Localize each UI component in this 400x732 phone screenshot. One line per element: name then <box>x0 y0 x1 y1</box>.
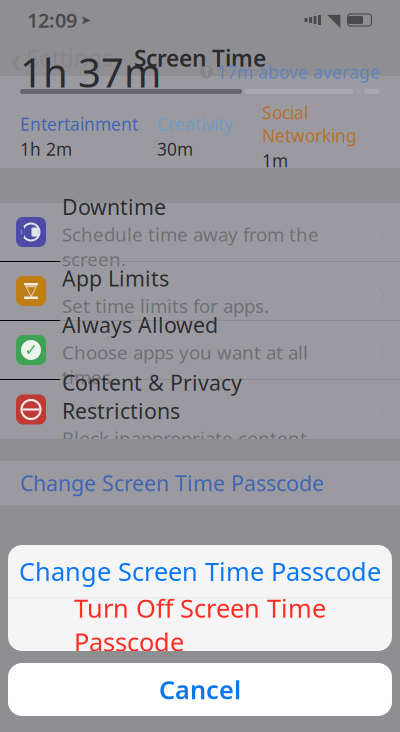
button[interactable]: Change Screen Time Passcode <box>0 461 400 505</box>
button[interactable]: Change Screen Time Passcode <box>8 545 392 598</box>
staticText: 17m above average <box>217 60 380 83</box>
staticText: Screen Time <box>134 43 266 73</box>
staticText: ‹ <box>10 31 22 84</box>
button[interactable]: Downtime <box>0 203 400 262</box>
staticText: Settings <box>27 43 113 73</box>
staticText: Always Allowed <box>62 310 218 339</box>
staticText: Content & Privacy Restrictions <box>62 368 242 425</box>
staticText: 12:09 <box>27 7 77 33</box>
staticText: ✓ <box>24 341 37 359</box>
staticText: 1m <box>262 149 288 172</box>
staticText: Turn Off Screen Time Passcode <box>74 591 326 658</box>
staticText: Schedule time away from the screen. <box>62 222 319 271</box>
staticText: Creativity <box>157 112 233 135</box>
staticText: Choose apps you want at all times. <box>62 340 308 389</box>
staticText: 30m <box>157 137 193 160</box>
staticText: ➤ <box>80 12 91 27</box>
staticText: 1h 37m <box>20 45 161 98</box>
button[interactable]: Cancel <box>8 663 392 716</box>
staticText: Block inappropriate content. <box>62 426 312 451</box>
staticText: Entertainment <box>20 112 138 135</box>
staticText: 1h 2m <box>20 137 72 160</box>
staticText: Change Screen Time Passcode <box>19 554 381 588</box>
staticText: ◥ <box>327 10 340 30</box>
staticText: ▽ <box>25 283 36 299</box>
button[interactable]: Turn Off Screen Time Passcode <box>8 598 392 651</box>
button[interactable]: ✓ <box>0 321 400 380</box>
button[interactable]: Content & Privacy Restrictions <box>0 380 400 439</box>
staticText: Downtime <box>62 192 166 221</box>
button[interactable]: ‹ <box>0 40 121 76</box>
staticText: Change Screen Time Passcode <box>20 469 324 497</box>
staticText: App Limits <box>62 264 169 292</box>
button[interactable]: ▽ <box>0 262 400 321</box>
staticText: ↑ <box>201 65 211 79</box>
staticText: Cancel <box>159 673 241 706</box>
staticText: Set time limits for apps. <box>62 293 269 318</box>
staticText: Social Networking <box>262 101 357 147</box>
